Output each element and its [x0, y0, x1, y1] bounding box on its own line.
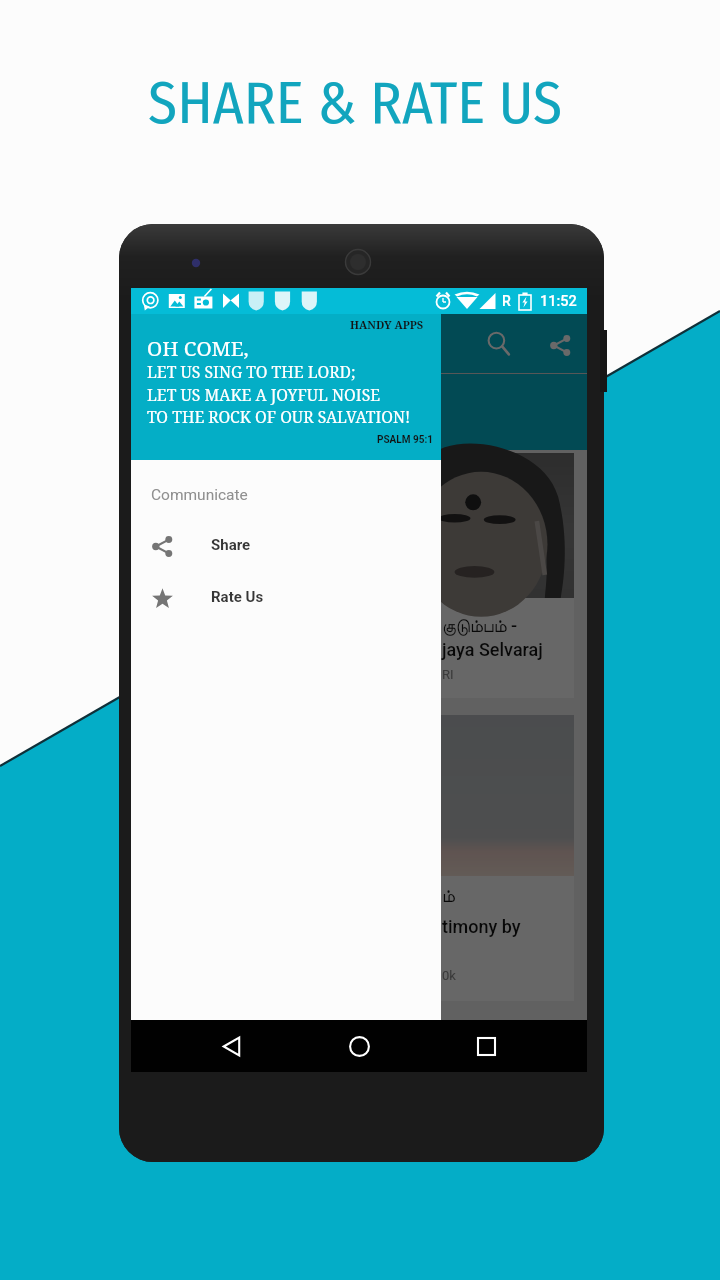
- staticText: 11:52: [540, 293, 577, 310]
- button[interactable]: ம்: [139, 715, 574, 1001]
- button[interactable]: குடும்பம் -: [139, 453, 574, 698]
- button[interactable]: Home: [336, 1020, 382, 1072]
- button[interactable]: Search: [478, 323, 520, 365]
- staticText: timony by: [442, 916, 521, 937]
- staticText: PSALM 95:1: [377, 434, 434, 446]
- button[interactable]: Recents: [463, 1020, 509, 1072]
- staticText: ம்: [442, 888, 455, 906]
- staticText: R: [502, 293, 511, 309]
- button[interactable]: Back: [209, 1020, 255, 1072]
- staticText: HANDY APPS: [350, 317, 424, 332]
- staticText: OH COME,: [147, 334, 249, 362]
- staticText: jaya Selvaraj: [442, 639, 543, 660]
- staticText: Share: [211, 536, 251, 554]
- staticText: LET US MAKE A JOYFUL NOISE: [147, 384, 381, 406]
- staticText: TO THE ROCK OF OUR SALVATION!: [147, 406, 411, 428]
- staticText: Communicate: [151, 486, 248, 504]
- button[interactable]: Share: [539, 324, 581, 366]
- staticText: SHARE & RATE US: [148, 68, 563, 139]
- staticText: Rate Us: [211, 588, 264, 606]
- button[interactable]: Share: [131, 520, 441, 572]
- staticText: 0k: [442, 968, 456, 983]
- staticText: குடும்பம் -: [442, 615, 518, 636]
- button[interactable]: Rate Us: [131, 572, 441, 624]
- staticText: LET US SING TO THE LORD;: [147, 361, 356, 383]
- staticText: RI: [442, 667, 454, 682]
